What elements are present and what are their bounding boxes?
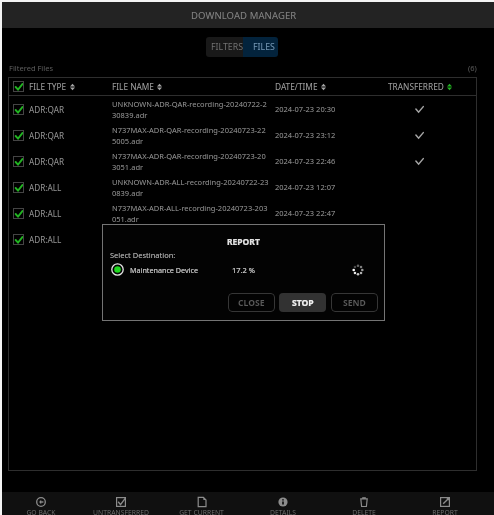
staticText: GO BACK xyxy=(26,508,56,515)
button[interactable]: TRANSFERRED xyxy=(388,77,477,96)
staticText: 2024-07-23 23:12 xyxy=(275,130,336,140)
button[interactable]: Untransferred xyxy=(81,492,161,515)
staticText: (6) xyxy=(468,63,477,73)
button[interactable]: DATE/TIME xyxy=(275,77,388,96)
staticText: STOP xyxy=(292,297,314,309)
button[interactable]: FILE TYPE xyxy=(29,77,112,96)
staticText: N737MAX-ADR-QAR-recording-20240723-22 xyxy=(112,125,266,135)
staticText: TRANSFERRED xyxy=(388,81,444,92)
button[interactable]: STOP xyxy=(279,293,326,312)
staticText: REPORT xyxy=(227,236,260,248)
button[interactable]: CLOSE xyxy=(228,293,275,312)
staticText: UNTRANSFERRED xyxy=(93,508,149,515)
button[interactable]: ADR:ALL xyxy=(8,226,477,252)
staticText: ADR:QAR xyxy=(29,156,65,167)
staticText: Select Destination: xyxy=(110,250,176,260)
staticText: DOWNLOAD MANAGER xyxy=(191,9,297,22)
staticText: FILE NAME xyxy=(112,81,154,92)
staticText: DELETE xyxy=(352,508,376,515)
button[interactable]: Maintenance Device xyxy=(111,263,198,276)
staticText: SEND xyxy=(343,297,366,309)
staticText: CLOSE xyxy=(238,297,265,309)
button[interactable]: ADR:QAR xyxy=(8,96,477,122)
button[interactable]: Report xyxy=(404,492,485,515)
staticText: GET CURRENT xyxy=(179,508,224,515)
button[interactable]: ADR:QAR xyxy=(8,148,477,174)
staticText: DATE/TIME xyxy=(275,81,318,92)
staticText: 17.2 % xyxy=(232,265,256,275)
button[interactable]: FILE NAME xyxy=(112,77,275,96)
button[interactable]: Details xyxy=(242,492,323,515)
button[interactable]: FILTERS xyxy=(206,37,243,57)
staticText: UNKNOWN-ADR-ALL-recording-20240722-23 xyxy=(112,177,269,187)
button[interactable]: ADR:QAR xyxy=(8,122,477,148)
staticText: 2024-07-23 22:46 xyxy=(275,156,336,166)
staticText: FILTERS xyxy=(211,41,244,53)
button[interactable]: SEND xyxy=(331,293,378,312)
staticText: ADR:ALL xyxy=(29,208,62,219)
staticText: DETAILS xyxy=(270,508,296,515)
staticText: FILE TYPE xyxy=(29,81,67,92)
staticText: REPORT xyxy=(432,508,458,515)
button[interactable]: ADR:ALL xyxy=(8,200,477,226)
staticText: ADR:QAR xyxy=(29,104,65,115)
staticText: 5005.adr xyxy=(112,136,144,146)
staticText: ADR:QAR xyxy=(29,130,65,141)
button[interactable]: ADR:ALL xyxy=(8,174,477,200)
staticText: ADR:ALL xyxy=(29,182,62,193)
button[interactable]: FILES xyxy=(243,37,278,57)
staticText: 0839.adr xyxy=(112,188,144,198)
staticText: N737MAX-ADR-QAR-recording-20240723-20 xyxy=(112,151,266,161)
button[interactable]: Delete xyxy=(323,492,404,515)
staticText: N737MAX-ADR-ALL-recording-20240723-203 xyxy=(112,203,268,213)
button[interactable]: Go back xyxy=(1,492,81,515)
staticText: 30839.adr xyxy=(112,110,148,120)
staticText: Filtered Files xyxy=(9,63,54,73)
staticText: ADR:ALL xyxy=(29,234,62,245)
button[interactable]: Get current xyxy=(161,492,242,515)
staticText: Maintenance Device xyxy=(130,265,198,275)
staticText: 2024-07-23 22:47 xyxy=(275,208,336,218)
staticText: 2024-07-23 20:30 xyxy=(275,104,336,114)
staticText: 3051.adr xyxy=(112,162,144,172)
staticText: 051.adr xyxy=(112,214,139,224)
staticText: 2024-07-23 12:07 xyxy=(275,182,336,192)
staticText: UNKNOWN-ADR-QAR-recording-20240722-2 xyxy=(112,99,267,109)
staticText: FILES xyxy=(253,41,275,53)
